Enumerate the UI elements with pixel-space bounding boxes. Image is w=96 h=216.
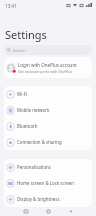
button[interactable]: Home screen & Lock screen: [4, 175, 92, 191]
button[interactable]: Login with OnePlus account: [4, 57, 92, 78]
button[interactable]: Display & brightness: [4, 191, 92, 207]
staticText: Display & brightness: [17, 196, 60, 202]
staticText: Login with OnePlus account: [18, 62, 77, 68]
staticText: Personalisations: [17, 164, 51, 170]
button[interactable]: Back: [62, 204, 78, 216]
staticText: Home screen & Lock screen: [17, 180, 74, 186]
staticText: 13:41: [5, 3, 17, 9]
button[interactable]: Mobile network: [4, 102, 92, 118]
staticText: Bluetooth: [17, 123, 38, 129]
staticText: Mobile network: [17, 107, 50, 113]
staticText: Wi-Fi: [17, 91, 28, 97]
button[interactable]: Connection & sharing: [4, 134, 92, 150]
button[interactable]: Bluetooth: [4, 118, 92, 134]
staticText: Search: [13, 48, 26, 53]
button[interactable]: Recent apps: [18, 204, 34, 216]
button[interactable]: Home: [40, 204, 56, 216]
staticText: Connection & sharing: [17, 139, 62, 145]
staticText: Settings: [5, 27, 47, 42]
button[interactable]: Search: [4, 45, 92, 55]
button[interactable]: Wi-Fi: [4, 86, 92, 102]
button[interactable]: Personalisations: [4, 159, 92, 175]
staticText: Get exclusive perks with OnePlus: [18, 69, 73, 74]
